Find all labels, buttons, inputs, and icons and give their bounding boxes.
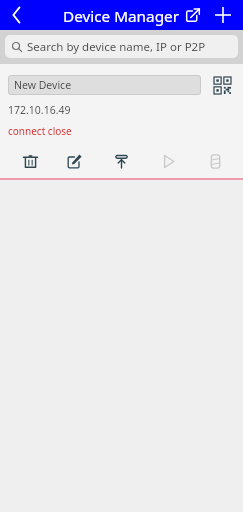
button[interactable]: Play: [154, 148, 182, 174]
staticText: Search by device name, IP or P2P: [27, 39, 206, 55]
button[interactable]: Back: [2, 0, 32, 30]
button[interactable]: Scan QR code: [209, 72, 235, 98]
staticText: Device Manager: [63, 6, 179, 27]
staticText: connect close: [8, 124, 72, 138]
button[interactable]: Delete: [16, 148, 44, 174]
button[interactable]: Add device: [211, 3, 235, 27]
button[interactable]: Edit: [60, 148, 88, 174]
staticText: New Device: [14, 78, 72, 92]
button[interactable]: Upload: [107, 148, 135, 174]
button[interactable]: Storage: [201, 148, 229, 174]
button[interactable]: New Device: [8, 75, 201, 95]
staticText: 172.10.16.49: [8, 103, 71, 117]
button[interactable]: Search by device name, IP or P2P: [5, 35, 238, 58]
button[interactable]: Open in new window: [182, 4, 204, 26]
